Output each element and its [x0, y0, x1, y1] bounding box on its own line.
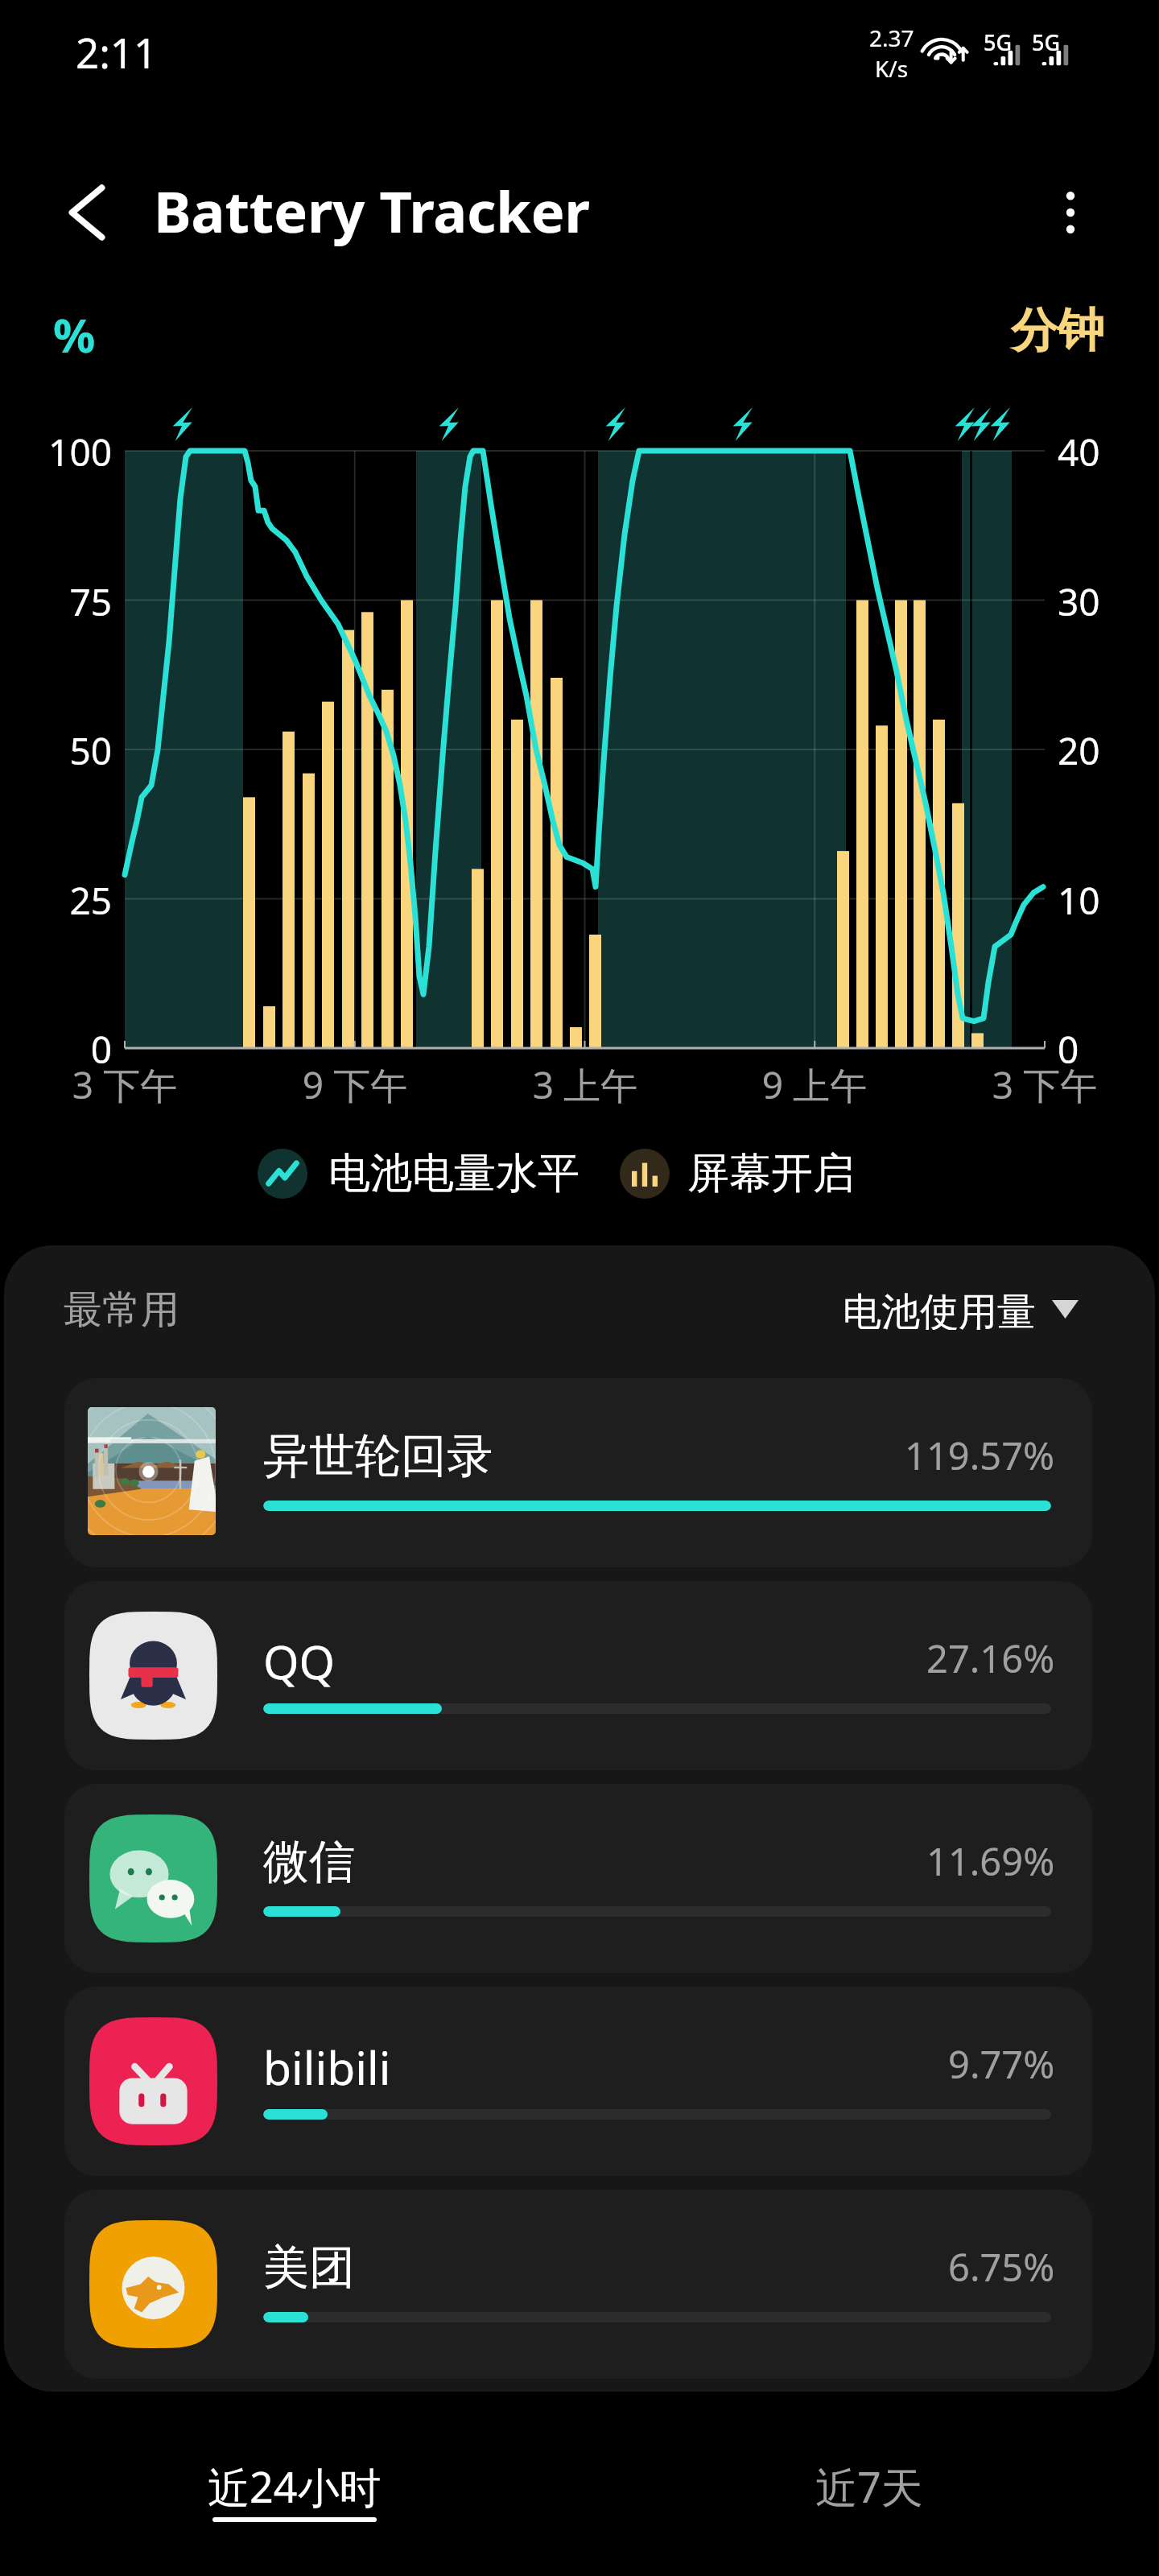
button[interactable]: 电池使用量: [836, 1285, 1085, 1333]
staticText: 10: [1058, 875, 1146, 926]
staticText: 11.69%: [926, 1835, 1055, 1887]
staticText: 最常用: [64, 1286, 179, 1334]
button[interactable]: 美团: [64, 2190, 1092, 2379]
staticText: 0: [1058, 1024, 1146, 1075]
staticText: 20: [1058, 725, 1146, 776]
button[interactable]: 近7天: [772, 2438, 967, 2534]
staticText: 近7天: [815, 2458, 923, 2515]
staticText: 6.75%: [948, 2241, 1055, 2293]
staticText: 电池使用量: [843, 1288, 1036, 1330]
button[interactable]: QQ: [64, 1581, 1092, 1770]
staticText: QQ: [263, 1630, 336, 1693]
staticText: 9 上午: [718, 1059, 911, 1110]
staticText: 屏幕开启: [687, 1147, 855, 1200]
staticText: 异世轮回录: [263, 1427, 493, 1485]
staticText: 100: [0, 427, 112, 477]
staticText: 电池电量水平: [328, 1147, 579, 1200]
button[interactable]: 异世轮回录: [64, 1378, 1092, 1567]
staticText: 5G: [984, 27, 1013, 57]
staticText: 3 下午: [28, 1059, 221, 1110]
staticText: 40: [1058, 427, 1146, 477]
staticText: 25: [0, 875, 112, 926]
staticText: 30: [1058, 576, 1146, 627]
staticText: 75: [0, 576, 112, 627]
button[interactable]: bilibili: [64, 1987, 1092, 2176]
staticText: 5G: [1032, 27, 1061, 57]
staticText: 50: [0, 725, 112, 776]
staticText: 9 下午: [258, 1059, 452, 1110]
staticText: Battery Tracker: [154, 172, 590, 249]
staticText: 分钟: [1011, 301, 1104, 360]
staticText: 119.57%: [905, 1430, 1055, 1481]
staticText: 9.77%: [948, 2038, 1055, 2090]
button[interactable]: More options: [1022, 164, 1119, 261]
staticText: 0: [0, 1024, 112, 1075]
staticText: 3 下午: [948, 1059, 1141, 1110]
staticText: 微信: [263, 1833, 355, 1891]
staticText: bilibili: [263, 2036, 391, 2099]
staticText: %: [53, 303, 96, 366]
button[interactable]: Back: [39, 164, 135, 261]
button[interactable]: 微信: [64, 1784, 1092, 1973]
staticText: 27.16%: [926, 1633, 1055, 1684]
staticText: 美团: [263, 2239, 355, 2297]
staticText: 3 上午: [489, 1059, 682, 1110]
staticText: 近24小时: [208, 2458, 382, 2515]
button[interactable]: 近24小时: [164, 2438, 425, 2541]
staticText: 2:11: [76, 24, 158, 80]
staticText: 2.37: [869, 23, 914, 53]
staticText: K/s: [875, 53, 909, 84]
